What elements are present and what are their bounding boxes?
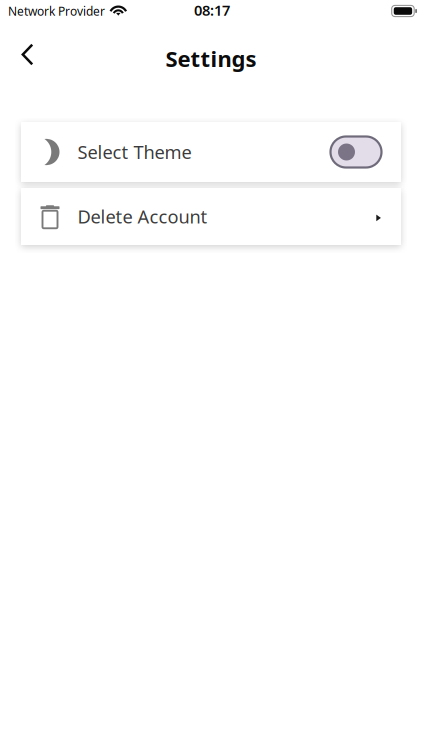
staticText: Network Provider <box>8 3 105 19</box>
button[interactable]: Delete Account <box>21 188 401 245</box>
button[interactable]: Select Theme <box>21 122 401 182</box>
staticText: Settings <box>165 43 256 73</box>
staticText: Delete Account <box>77 204 207 229</box>
staticText: 08:17 <box>194 0 230 20</box>
button[interactable]: Back <box>5 32 49 76</box>
staticText: Select Theme <box>77 140 191 164</box>
